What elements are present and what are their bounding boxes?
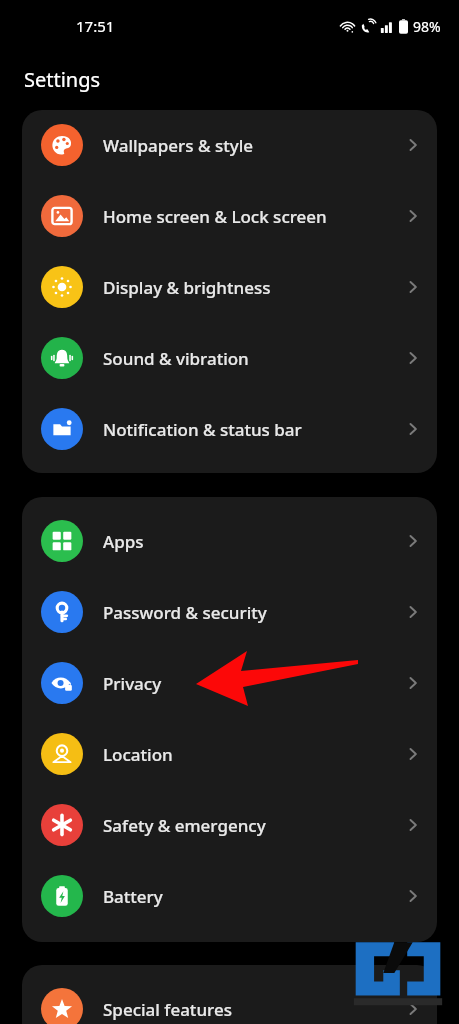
button[interactable]: Sound & vibration — [22, 330, 437, 386]
staticText: Settings — [24, 66, 101, 93]
staticText: Location — [103, 743, 173, 766]
button[interactable]: Special features — [22, 981, 437, 1024]
staticText: Display & brightness — [103, 276, 271, 299]
staticText: 17:51 — [76, 16, 115, 36]
staticText: 98% — [413, 17, 441, 36]
staticText: Apps — [103, 530, 144, 553]
button[interactable]: Wallpapers & style — [22, 117, 437, 173]
button[interactable]: Privacy — [22, 655, 437, 711]
staticText: Privacy — [103, 672, 162, 695]
staticText: Notification & status bar — [103, 418, 302, 441]
button[interactable]: Display & brightness — [22, 259, 437, 315]
button[interactable]: Safety & emergency — [22, 797, 437, 853]
staticText: Wallpapers & style — [103, 134, 254, 157]
button[interactable]: Battery — [22, 868, 437, 924]
staticText: Safety & emergency — [103, 814, 266, 837]
staticText: Battery — [103, 885, 163, 908]
button[interactable]: Location — [22, 726, 437, 782]
button[interactable]: Password & security — [22, 584, 437, 640]
button[interactable]: Home screen & Lock screen — [22, 188, 437, 244]
staticText: Password & security — [103, 601, 267, 624]
button[interactable]: Apps — [22, 513, 437, 569]
staticText: Special features — [103, 998, 232, 1021]
staticText: Home screen & Lock screen — [103, 205, 327, 228]
button[interactable]: Notification & status bar — [22, 401, 437, 457]
staticText: Sound & vibration — [103, 347, 249, 370]
